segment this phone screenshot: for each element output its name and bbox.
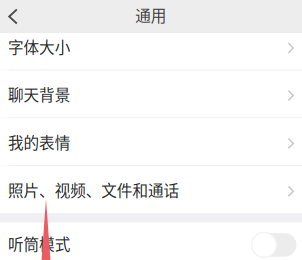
staticText: 听筒模式 [8, 232, 71, 255]
staticText: 字体大小 [8, 35, 71, 58]
staticText: 照片、视频、文件和通话 [8, 178, 179, 201]
button[interactable]: 聊天背景 [0, 70, 302, 118]
button[interactable]: 我的表情 [0, 118, 302, 165]
button[interactable]: 照片、视频、文件和通话 [0, 166, 302, 213]
button[interactable]: 字体大小 [0, 33, 302, 70]
staticText: 我的表情 [8, 131, 71, 153]
staticText: 聊天背景 [8, 83, 71, 105]
button[interactable]: 听筒模式 [251, 230, 296, 257]
button[interactable]: 返回 [0, 0, 26, 33]
staticText: 通用 [135, 4, 167, 26]
